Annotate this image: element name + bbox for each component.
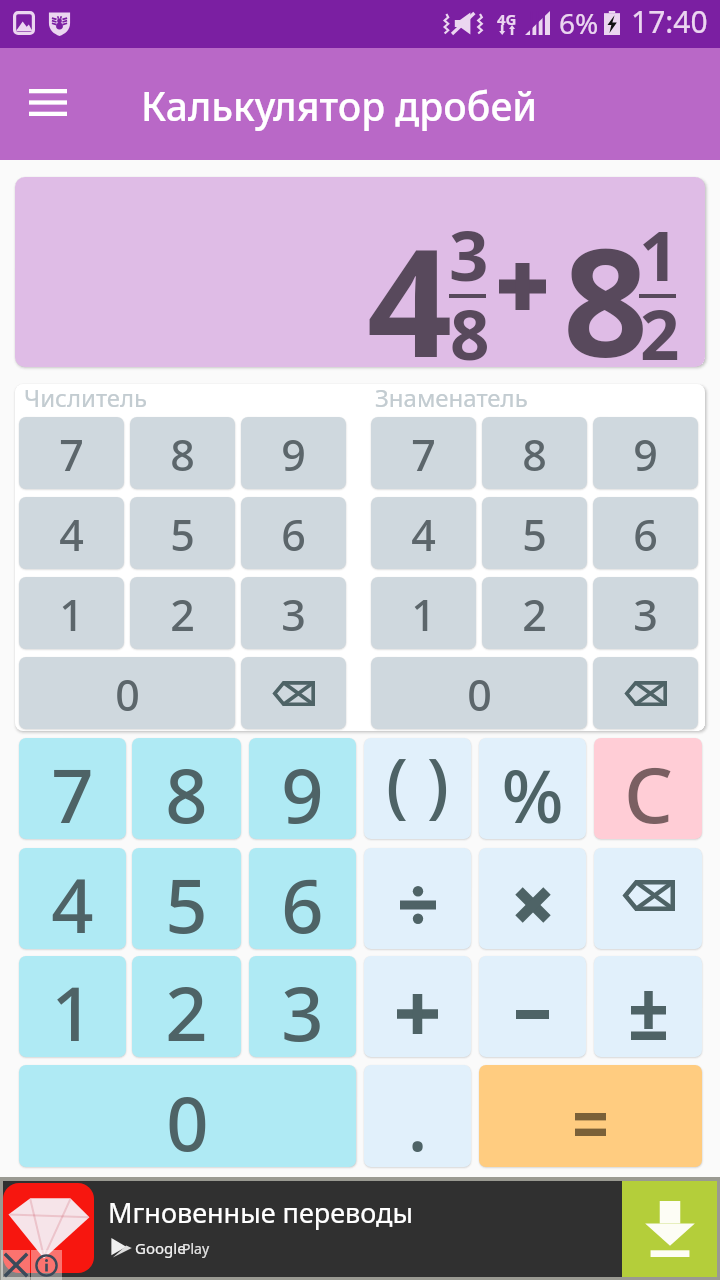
button[interactable]: 9 [249, 738, 356, 839]
button[interactable]: 7 [19, 417, 124, 489]
button[interactable]: 8 [130, 417, 235, 489]
staticText: 5 [165, 854, 208, 949]
button[interactable]: 8 [482, 417, 587, 489]
button[interactable]: 4 [19, 497, 124, 569]
button[interactable]: 4 [19, 848, 126, 949]
button[interactable]: 1 [19, 956, 126, 1057]
button[interactable]: 2 [482, 577, 587, 649]
staticText: % [501, 745, 564, 839]
staticText: 6 [633, 505, 658, 564]
staticText: Знаменатель [375, 384, 528, 414]
button[interactable]: 5 [130, 497, 235, 569]
button[interactable]: Plus minus [594, 956, 702, 1057]
staticText: 17:40 [631, 1, 708, 42]
staticText: 1 [59, 585, 84, 644]
staticText: 4 [51, 854, 94, 949]
staticText: 3 [449, 207, 489, 301]
staticText: 9 [281, 425, 306, 484]
button[interactable]: C [594, 738, 702, 839]
button[interactable]: 1 [371, 577, 476, 649]
button[interactable]: Backspace [241, 657, 346, 729]
button[interactable]: 6 [241, 497, 346, 569]
button[interactable]: Open navigation menu [11, 65, 85, 139]
button[interactable]: 4 [371, 497, 476, 569]
button[interactable]: 5 [482, 497, 587, 569]
staticText: 6% [559, 4, 599, 42]
button[interactable]: Ad info [31, 1250, 62, 1280]
staticText: Калькулятор дробей [141, 79, 538, 132]
button[interactable]: 9 [241, 417, 346, 489]
staticText: 8 [165, 744, 208, 839]
staticText: 7 [59, 425, 84, 484]
staticText: 9 [633, 425, 658, 484]
staticText: 4G [497, 9, 517, 29]
button[interactable]: 6 [593, 497, 698, 569]
staticText: 7 [411, 425, 436, 484]
button[interactable]: % [479, 738, 586, 839]
button[interactable]: ( ) [364, 738, 471, 839]
staticText: 5 [522, 505, 547, 564]
staticText: 3 [281, 962, 324, 1057]
staticText: 1 [411, 585, 436, 644]
button[interactable]: Multiply [479, 848, 586, 949]
button[interactable]: . [364, 1065, 471, 1167]
button[interactable]: 2 [132, 956, 241, 1057]
staticText: 2 [165, 962, 208, 1057]
staticText: 1 [639, 207, 679, 301]
button[interactable]: 5 [132, 848, 241, 949]
button[interactable]: Install [622, 1181, 717, 1277]
staticText: 4 [411, 505, 436, 564]
button[interactable]: 1 [19, 577, 124, 649]
staticText: 0 [115, 665, 140, 724]
button[interactable]: 3 [593, 577, 698, 649]
staticText: 8 [522, 425, 547, 484]
staticText: Мгновенные переводы [108, 1194, 413, 1231]
staticText: 2 [522, 585, 547, 644]
button[interactable]: 9 [593, 417, 698, 489]
staticText: 3 [633, 585, 658, 644]
staticText: 4 [367, 198, 453, 367]
button[interactable]: 3 [249, 956, 356, 1057]
staticText: 1 [51, 962, 94, 1057]
staticText: 6 [281, 854, 324, 949]
button[interactable]: Divide [364, 848, 471, 949]
button[interactable]: Close ad [1, 1250, 30, 1280]
staticText: ( ) [386, 738, 449, 831]
button[interactable]: Backspace [593, 657, 698, 729]
button[interactable]: Minus [479, 956, 586, 1057]
staticText: 6 [281, 505, 306, 564]
staticText: 5 [170, 505, 195, 564]
staticText: . [407, 1072, 428, 1167]
button[interactable]: Equals [479, 1065, 702, 1167]
button[interactable]: Advertised app icon [3, 1183, 94, 1273]
staticText: Числитель [24, 384, 148, 414]
staticText: 2 [640, 286, 680, 367]
button[interactable]: 6 [249, 848, 356, 949]
staticText: C [624, 741, 673, 839]
staticText: Google [135, 1238, 186, 1258]
staticText: 4 [59, 505, 84, 564]
button[interactable]: 0 [19, 1065, 356, 1167]
button[interactable]: 8 [132, 738, 241, 839]
staticText: 3 [281, 585, 306, 644]
button[interactable]: Backspace [594, 848, 702, 949]
button[interactable]: 3 [241, 577, 346, 649]
button[interactable]: 7 [19, 738, 126, 839]
button[interactable]: 2 [130, 577, 235, 649]
staticText: 9 [281, 744, 324, 839]
staticText: 8 [450, 286, 490, 367]
button[interactable]: 7 [371, 417, 476, 489]
button[interactable]: 0 [19, 657, 235, 729]
button[interactable]: Plus [364, 956, 471, 1057]
staticText: 0 [166, 1072, 209, 1167]
button[interactable]: 0 [371, 657, 587, 729]
staticText: 8 [170, 425, 195, 484]
staticText: 8 [563, 198, 649, 367]
staticText: 0 [467, 665, 492, 724]
staticText: 2 [170, 585, 195, 644]
staticText: 7 [51, 744, 94, 839]
staticText: Play [182, 1239, 210, 1258]
